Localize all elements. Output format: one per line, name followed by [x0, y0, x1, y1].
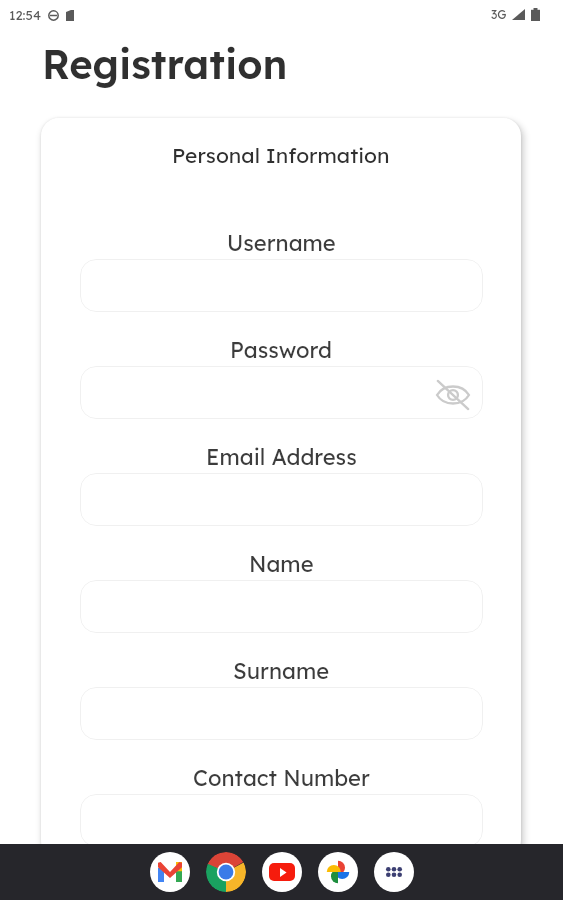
button[interactable]: YouTube: [262, 852, 302, 892]
staticText: Email Address: [206, 443, 357, 471]
staticText: Name: [249, 550, 314, 578]
button[interactable]: Gmail: [150, 852, 190, 892]
staticText: 12:54: [9, 7, 42, 23]
staticText: Surname: [233, 657, 330, 685]
staticText: Password: [230, 336, 332, 364]
staticText: Registration: [42, 39, 288, 89]
staticText: Contact Number: [193, 764, 370, 792]
staticText: Username: [227, 229, 336, 257]
staticText: 3G: [491, 7, 507, 22]
button[interactable]: [80, 794, 483, 847]
other: Show password: [434, 376, 472, 414]
button[interactable]: Google Photos: [318, 852, 358, 892]
staticText: Personal Information: [172, 142, 390, 168]
button[interactable]: App drawer: [374, 852, 414, 892]
button[interactable]: Show password: [80, 366, 483, 419]
button[interactable]: Chrome: [206, 852, 246, 892]
